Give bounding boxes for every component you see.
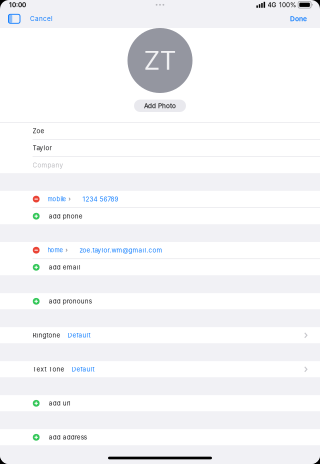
staticText: mobile [47,196,65,203]
staticText: 1234 56789 [82,195,118,203]
staticText: Default [68,331,91,339]
staticText: 10:00 [9,1,26,9]
staticText: Zoe [33,127,45,135]
staticText: add email [49,263,81,271]
staticText: Company [33,161,64,169]
staticText: zoe.taylor.wm@gmail.com [79,246,162,254]
button[interactable]: add url [0,395,320,411]
staticText: 100% [279,1,296,9]
button[interactable]: Ringtone [0,327,320,343]
button[interactable]: Add Photo [134,100,186,112]
button[interactable]: mobile [0,191,320,207]
staticText: add phone [49,212,83,220]
staticText: Default [72,365,95,373]
button[interactable]: add address [0,429,320,445]
staticText: Add Photo [144,102,176,110]
staticText: ZT [144,45,176,76]
staticText: add address [49,433,87,441]
staticText: Ringtone [33,331,61,339]
staticText: Cancel [30,15,53,23]
button[interactable]: Show sidebar [4,11,24,27]
button[interactable]: Cancel [24,11,59,27]
staticText: Taylor [33,144,52,152]
button[interactable]: Done [284,11,313,27]
button[interactable]: home [0,242,320,258]
staticText: add url [49,399,71,407]
staticText: Done [290,15,307,23]
button[interactable]: add email [0,259,320,275]
staticText: 4G [268,1,277,9]
staticText: home [47,247,62,254]
button[interactable]: add phone [0,208,320,224]
button[interactable]: Text Tone [0,361,320,377]
staticText: Text Tone [33,365,65,373]
staticText: add pronouns [49,297,92,305]
button[interactable]: add pronouns [0,293,320,309]
